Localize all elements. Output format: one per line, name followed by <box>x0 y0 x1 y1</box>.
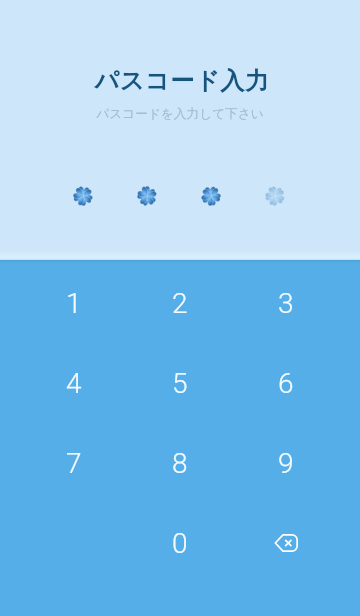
button[interactable]: 4 <box>21 343 127 423</box>
button[interactable]: 7 <box>21 423 127 503</box>
staticText: 9 <box>278 447 294 480</box>
button[interactable]: Delete <box>233 503 339 583</box>
staticText: 7 <box>66 447 82 480</box>
button[interactable]: 6 <box>233 343 339 423</box>
button[interactable]: 2 <box>127 263 233 343</box>
staticText: パスコード入力 <box>94 66 270 96</box>
staticText: 5 <box>172 367 188 400</box>
staticText: 2 <box>172 287 188 320</box>
button[interactable]: 0 <box>127 503 233 583</box>
staticText: パスコードを入力して下さい <box>96 106 264 122</box>
button[interactable]: 5 <box>127 343 233 423</box>
button[interactable]: 9 <box>233 423 339 503</box>
staticText: 3 <box>278 287 294 320</box>
button[interactable]: 3 <box>233 263 339 343</box>
staticText: 1 <box>66 287 82 320</box>
staticText: 6 <box>278 367 294 400</box>
button[interactable]: 1 <box>21 263 127 343</box>
button[interactable]: 8 <box>127 423 233 503</box>
staticText: 0 <box>172 527 188 560</box>
staticText: 8 <box>172 447 188 480</box>
staticText: 4 <box>66 367 82 400</box>
